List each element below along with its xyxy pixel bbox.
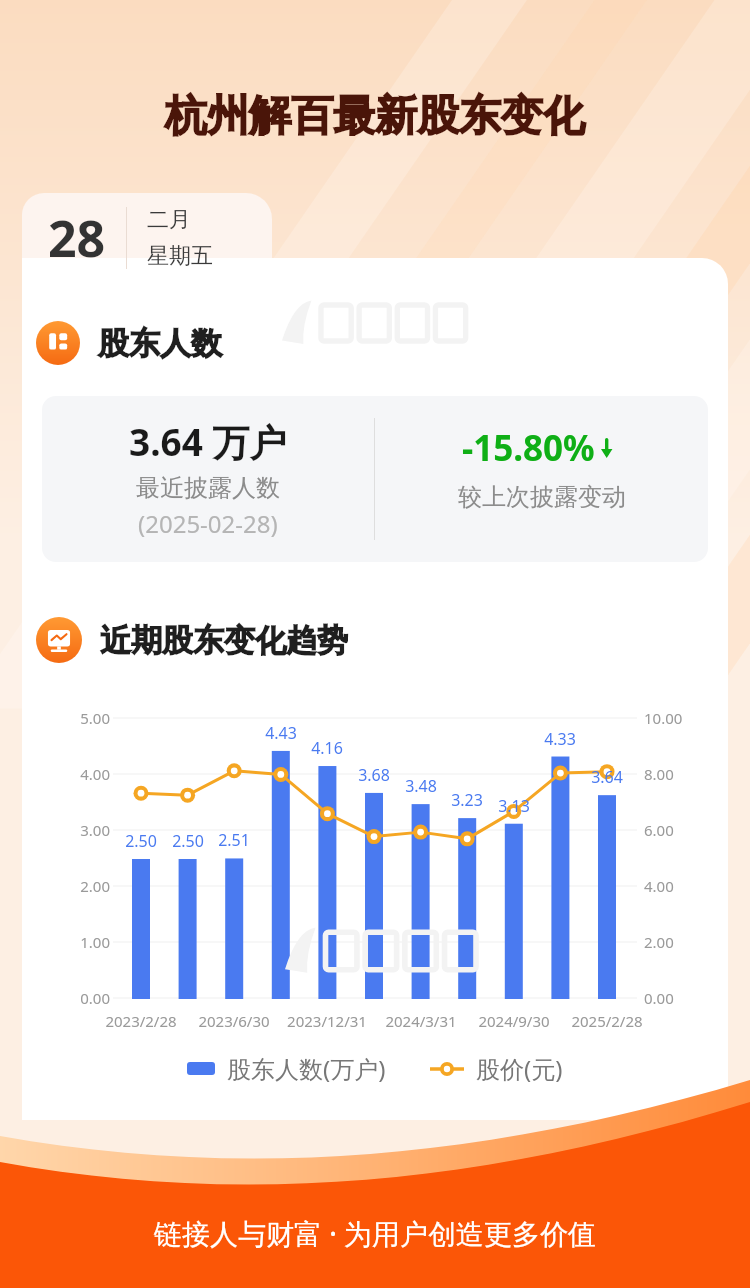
staticText: 3.48 xyxy=(391,775,451,797)
staticText: 4.16 xyxy=(297,737,357,759)
staticText: 二月 xyxy=(147,206,191,234)
staticText: 2023/6/30 xyxy=(179,1011,289,1031)
staticText: 2023/12/31 xyxy=(272,1011,382,1031)
staticText: 3.64 万户 xyxy=(129,416,287,467)
staticText: 2.50 xyxy=(111,830,171,852)
staticText: 4.00 xyxy=(60,764,110,784)
staticText: 2.51 xyxy=(204,829,264,851)
staticText: 28 xyxy=(48,204,106,272)
staticText: 4.43 xyxy=(251,722,311,744)
staticText: 最近披露人数 xyxy=(136,473,280,503)
staticText: 2.00 xyxy=(644,932,708,952)
staticText: 股价(元) xyxy=(476,1052,563,1085)
staticText: 8.00 xyxy=(644,764,708,784)
staticText: 较上次披露变动 xyxy=(458,482,626,512)
staticText: 3.64 xyxy=(577,766,637,788)
staticText: 星期五 xyxy=(147,242,213,270)
staticText: 股东人数(万户) xyxy=(227,1052,386,1085)
staticText: 近期股东变化趋势 xyxy=(100,621,348,660)
staticText: 1.00 xyxy=(60,932,110,952)
staticText: 链接人与财富 · 为用户创造更多价值 xyxy=(0,1214,750,1252)
staticText: 2.50 xyxy=(158,830,218,852)
staticText: 3.00 xyxy=(60,820,110,840)
button[interactable]: 股东人数 xyxy=(36,318,222,368)
staticText: 0.00 xyxy=(644,988,708,1008)
staticText: 股东人数 xyxy=(98,324,222,363)
staticText: 3.23 xyxy=(437,789,497,811)
staticText: 2.00 xyxy=(60,876,110,896)
staticText: 3.68 xyxy=(344,764,404,786)
staticText: 2024/9/30 xyxy=(459,1011,569,1031)
staticText: 2023/2/28 xyxy=(86,1011,196,1031)
staticText: 4.00 xyxy=(644,876,708,896)
staticText: 2025/2/28 xyxy=(552,1011,662,1031)
staticText: -15.80% xyxy=(462,424,595,472)
staticText: 2024/3/31 xyxy=(366,1011,476,1031)
staticText: 10.00 xyxy=(644,708,708,728)
staticText: 5.00 xyxy=(60,708,110,728)
staticText: (2025-02-28) xyxy=(138,507,278,540)
staticText: 3.13 xyxy=(484,795,544,817)
other: 近期股东变化趋势 xyxy=(36,617,82,663)
staticText: 6.00 xyxy=(644,820,708,840)
staticText: 杭州解百最新股东变化 xyxy=(0,90,750,143)
staticText: 4.33 xyxy=(530,728,590,750)
button[interactable]: 近期股东变化趋势 xyxy=(36,615,348,665)
other: 股东人数 xyxy=(36,321,80,365)
staticText: 0.00 xyxy=(60,988,110,1008)
